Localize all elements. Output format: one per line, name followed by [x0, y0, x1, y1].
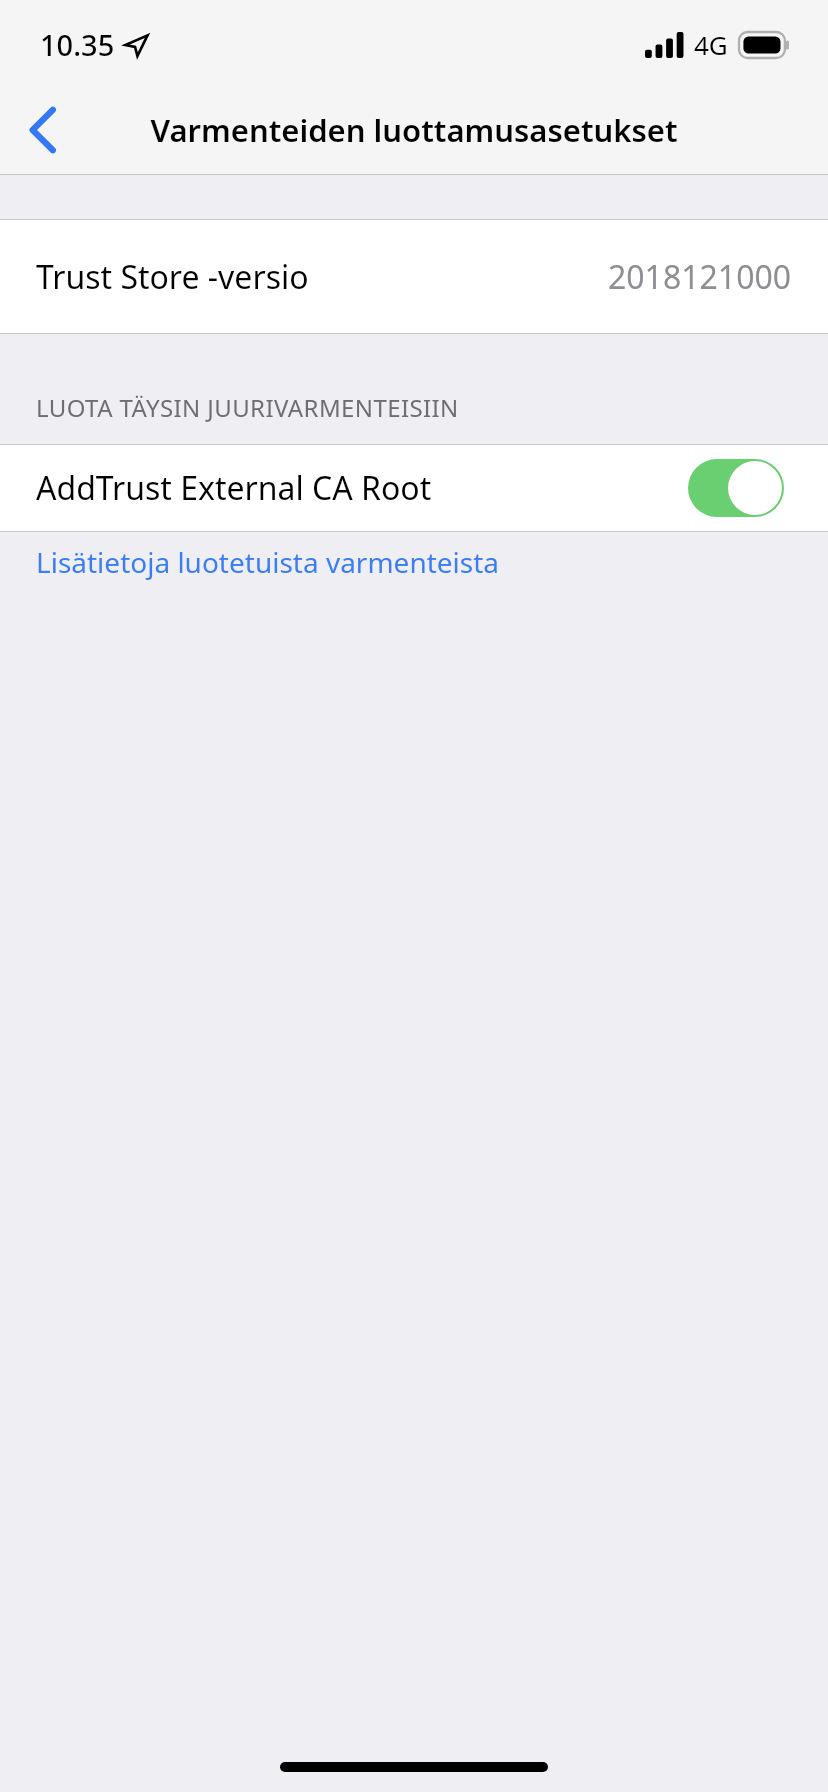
button[interactable]: Trust Store -versio [0, 220, 828, 333]
button[interactable]: Trust toggle, on [688, 459, 784, 517]
staticText: LUOTA TÄYSIN JUURIVARMENTEISIIN [36, 391, 459, 424]
staticText: 2018121000 [608, 255, 792, 299]
button[interactable]: Lisätietoja luotetuista varmenteista [0, 540, 828, 584]
button[interactable]: Back [0, 85, 86, 175]
staticText: AddTrust External CA Root [36, 466, 432, 510]
staticText: Varmenteiden luottamusasetukset [150, 109, 678, 151]
button[interactable]: AddTrust External CA Root [0, 445, 828, 531]
staticText: Lisätietoja luotetuista varmenteista [36, 543, 500, 581]
staticText: 4G [694, 27, 728, 62]
staticText: 10.35 [40, 25, 115, 64]
staticText: Trust Store -versio [36, 255, 309, 299]
